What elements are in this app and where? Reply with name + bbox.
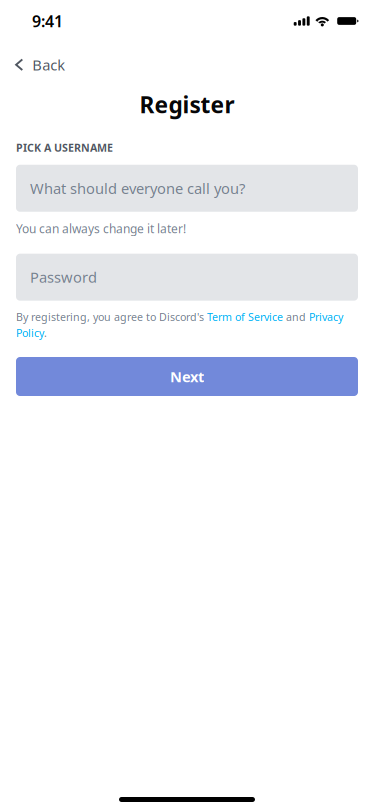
- staticText: You can always change it later!: [16, 221, 186, 237]
- staticText: Password: [30, 267, 97, 287]
- staticText: .: [44, 326, 47, 340]
- staticText: What should everyone call you?: [30, 178, 245, 198]
- staticText: 9:41: [32, 10, 63, 32]
- staticText: PICK A USERNAME: [16, 141, 113, 155]
- button[interactable]: Term of Service: [207, 310, 283, 324]
- staticText: Back: [32, 55, 65, 74]
- button[interactable]: Policy: [16, 326, 44, 340]
- button[interactable]: What should everyone call you?: [16, 165, 358, 212]
- button[interactable]: Password: [16, 254, 358, 301]
- staticText: Register: [139, 89, 234, 120]
- staticText: Term of Service: [207, 310, 283, 324]
- button[interactable]: Back: [0, 50, 79, 79]
- staticText: Next: [170, 367, 204, 386]
- button[interactable]: Next: [16, 357, 358, 396]
- staticText: Privacy: [309, 310, 343, 324]
- staticText: and: [283, 310, 309, 324]
- button[interactable]: Privacy: [309, 310, 343, 324]
- staticText: By registering, you agree to Discord's: [16, 310, 207, 324]
- staticText: Policy: [16, 326, 44, 340]
